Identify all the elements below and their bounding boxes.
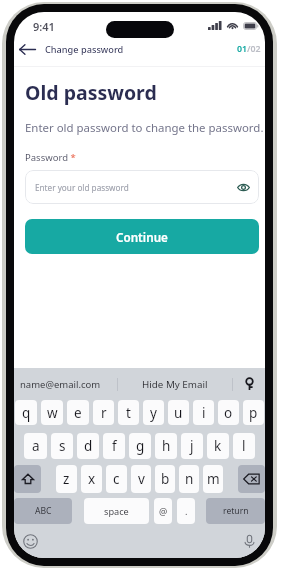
staticText: e <box>74 404 82 422</box>
staticText: f <box>112 437 117 455</box>
staticText: v <box>138 470 145 488</box>
staticText: g <box>136 437 145 455</box>
staticText: Enter your old password <box>35 182 129 193</box>
button[interactable]: s <box>51 433 73 459</box>
staticText: y <box>150 404 157 422</box>
button[interactable]: return <box>206 498 265 524</box>
button[interactable]: Shift <box>14 465 41 493</box>
button[interactable]: a <box>24 433 47 459</box>
staticText: Enter old password to change the passwor… <box>25 120 264 136</box>
staticText: t <box>126 404 131 422</box>
button[interactable]: Passwords <box>233 368 265 400</box>
staticText: o <box>224 404 233 422</box>
staticText: r <box>101 404 107 422</box>
button[interactable]: w <box>41 400 63 425</box>
button[interactable]: p <box>243 400 264 425</box>
button[interactable]: n <box>179 465 199 493</box>
button[interactable]: Hide My Email <box>118 368 232 400</box>
button[interactable]: Backspace <box>238 465 265 493</box>
staticText: d <box>84 437 93 455</box>
staticText: name@email.com <box>20 378 101 391</box>
staticText: l <box>242 437 246 455</box>
staticText: a <box>32 437 40 455</box>
button[interactable]: Emoji <box>22 533 39 550</box>
staticText: j <box>190 437 194 455</box>
button[interactable]: e <box>67 400 89 425</box>
staticText: Change password <box>45 43 124 56</box>
button[interactable]: d <box>77 433 99 459</box>
staticText: n <box>185 470 194 488</box>
button[interactable]: k <box>207 433 229 459</box>
button[interactable]: r <box>93 400 114 425</box>
staticText: b <box>161 470 170 488</box>
button[interactable]: y <box>143 400 164 425</box>
staticText: q <box>22 404 31 422</box>
button[interactable]: h <box>155 433 177 459</box>
button[interactable]: @ <box>154 498 172 524</box>
staticText: w <box>47 404 58 422</box>
button[interactable]: u <box>168 400 189 425</box>
staticText: Continue <box>116 229 168 245</box>
staticText: 9:41 <box>33 19 55 34</box>
button[interactable]: m <box>203 465 223 493</box>
button[interactable]: b <box>155 465 175 493</box>
button[interactable]: v <box>131 465 151 493</box>
button[interactable]: Continue <box>25 219 259 254</box>
button[interactable]: c <box>106 465 127 493</box>
staticText: Old password <box>25 79 157 106</box>
button[interactable]: . <box>177 498 195 524</box>
button[interactable]: o <box>218 400 239 425</box>
staticText: m <box>207 470 220 488</box>
staticText: u <box>174 404 183 422</box>
button[interactable]: j <box>181 433 203 459</box>
button[interactable]: name@email.com <box>14 368 117 400</box>
staticText: k <box>214 437 222 455</box>
button[interactable]: space <box>84 498 149 524</box>
button[interactable]: t <box>118 400 139 425</box>
button[interactable]: i <box>193 400 214 425</box>
staticText: ABC <box>35 505 52 517</box>
button[interactable]: x <box>81 465 102 493</box>
staticText: c <box>113 470 120 488</box>
staticText: @ <box>159 505 168 518</box>
staticText: space <box>104 505 129 518</box>
staticText: Hide My Email <box>142 378 208 391</box>
staticText: z <box>63 470 70 488</box>
button[interactable]: g <box>129 433 151 459</box>
staticText: h <box>162 437 171 455</box>
button[interactable]: f <box>103 433 125 459</box>
button[interactable]: Show password <box>235 179 252 196</box>
staticText: i <box>202 404 206 422</box>
staticText: p <box>249 404 258 422</box>
button[interactable]: z <box>56 465 77 493</box>
staticText: s <box>59 437 66 455</box>
staticText: 01/02 <box>237 43 261 55</box>
button[interactable]: Enter your old password <box>25 170 259 204</box>
staticText: Password * <box>25 151 76 164</box>
button[interactable]: ABC <box>14 498 72 524</box>
button[interactable]: Dictation <box>241 533 258 550</box>
staticText: return <box>223 505 249 517</box>
button[interactable]: l <box>233 433 255 459</box>
button[interactable]: Back <box>16 38 38 60</box>
button[interactable]: q <box>15 400 37 425</box>
staticText: . <box>185 505 188 518</box>
staticText: x <box>88 470 96 488</box>
